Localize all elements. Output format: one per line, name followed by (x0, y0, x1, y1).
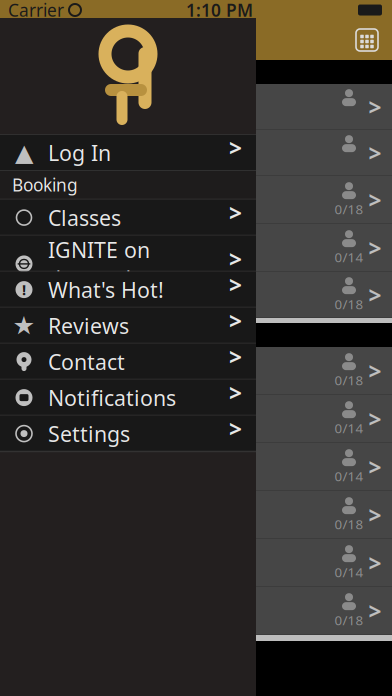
button[interactable]: Abs & Glutes (0, 443, 392, 491)
staticText: > (368, 452, 381, 482)
staticText: > (368, 280, 381, 310)
staticText: Classes (48, 203, 121, 232)
staticText: 0/18 (334, 515, 363, 533)
button[interactable] (0, 587, 392, 635)
button[interactable]: Abs & Glutes (0, 539, 392, 587)
staticText: > (229, 197, 242, 228)
button[interactable]: IGNITE on demand (0, 236, 256, 272)
staticText: HIIT (10, 235, 50, 261)
staticText: > (368, 138, 381, 168)
staticText: ▲ (15, 139, 33, 166)
staticText: IGNITE (10, 282, 76, 308)
button[interactable]: Calendar (352, 25, 392, 55)
staticText: 0/14 (334, 467, 363, 485)
staticText: > (368, 233, 381, 263)
staticText: Carrier (8, 0, 64, 21)
staticText: > (229, 269, 242, 300)
staticText: 1:10 PM (186, 0, 253, 21)
staticText: > (368, 356, 381, 386)
staticText: IGNITE on demand (48, 236, 150, 292)
staticText: > (368, 92, 381, 122)
staticText: 0/18 (334, 611, 363, 629)
button[interactable] (0, 491, 392, 539)
button[interactable]: STRENGTH & SCULPT (0, 176, 392, 224)
staticText: > (368, 548, 381, 578)
button[interactable]: ! (0, 272, 256, 308)
button[interactable] (0, 130, 392, 176)
staticText: > (229, 244, 242, 274)
button[interactable]: HIIT (0, 224, 392, 272)
staticText: 0/18 (334, 200, 363, 218)
staticText: STRENGTH & SCULPT (10, 187, 208, 213)
staticText: Contact (48, 347, 125, 376)
button[interactable] (0, 84, 392, 130)
staticText: > (368, 185, 381, 215)
button[interactable]: ▲ (0, 135, 256, 171)
staticText: > (229, 413, 242, 444)
staticText: > (368, 404, 381, 434)
staticText: > (368, 596, 381, 626)
staticText: 0/14 (334, 419, 363, 437)
staticText: > (368, 500, 381, 530)
staticText: 0/18 (334, 295, 363, 313)
button[interactable]: Settings (0, 416, 256, 452)
button[interactable] (0, 347, 392, 395)
button[interactable] (0, 395, 392, 443)
staticText: 0/14 (334, 248, 363, 266)
staticText: 0/14 (334, 563, 363, 581)
staticText: Reviews (48, 311, 129, 340)
staticText: Settings (48, 419, 130, 448)
button[interactable]: Classes (0, 200, 256, 236)
staticText: > (229, 377, 242, 408)
staticText: ! (22, 280, 26, 299)
button[interactable]: Contact (0, 344, 256, 380)
button[interactable]: ★ (0, 308, 256, 344)
staticText: > (229, 133, 242, 163)
staticText: Booking (12, 173, 78, 196)
button[interactable]: IGNITE (0, 272, 392, 318)
staticText: ★ (12, 311, 35, 340)
staticText: > (229, 341, 242, 372)
staticText: Notifications (48, 383, 176, 412)
staticText: Log In (48, 139, 111, 167)
staticText: What's Hot! (48, 275, 164, 304)
staticText: 0/18 (334, 371, 363, 389)
button[interactable]: Notifications (0, 380, 256, 416)
staticText: > (229, 305, 242, 336)
